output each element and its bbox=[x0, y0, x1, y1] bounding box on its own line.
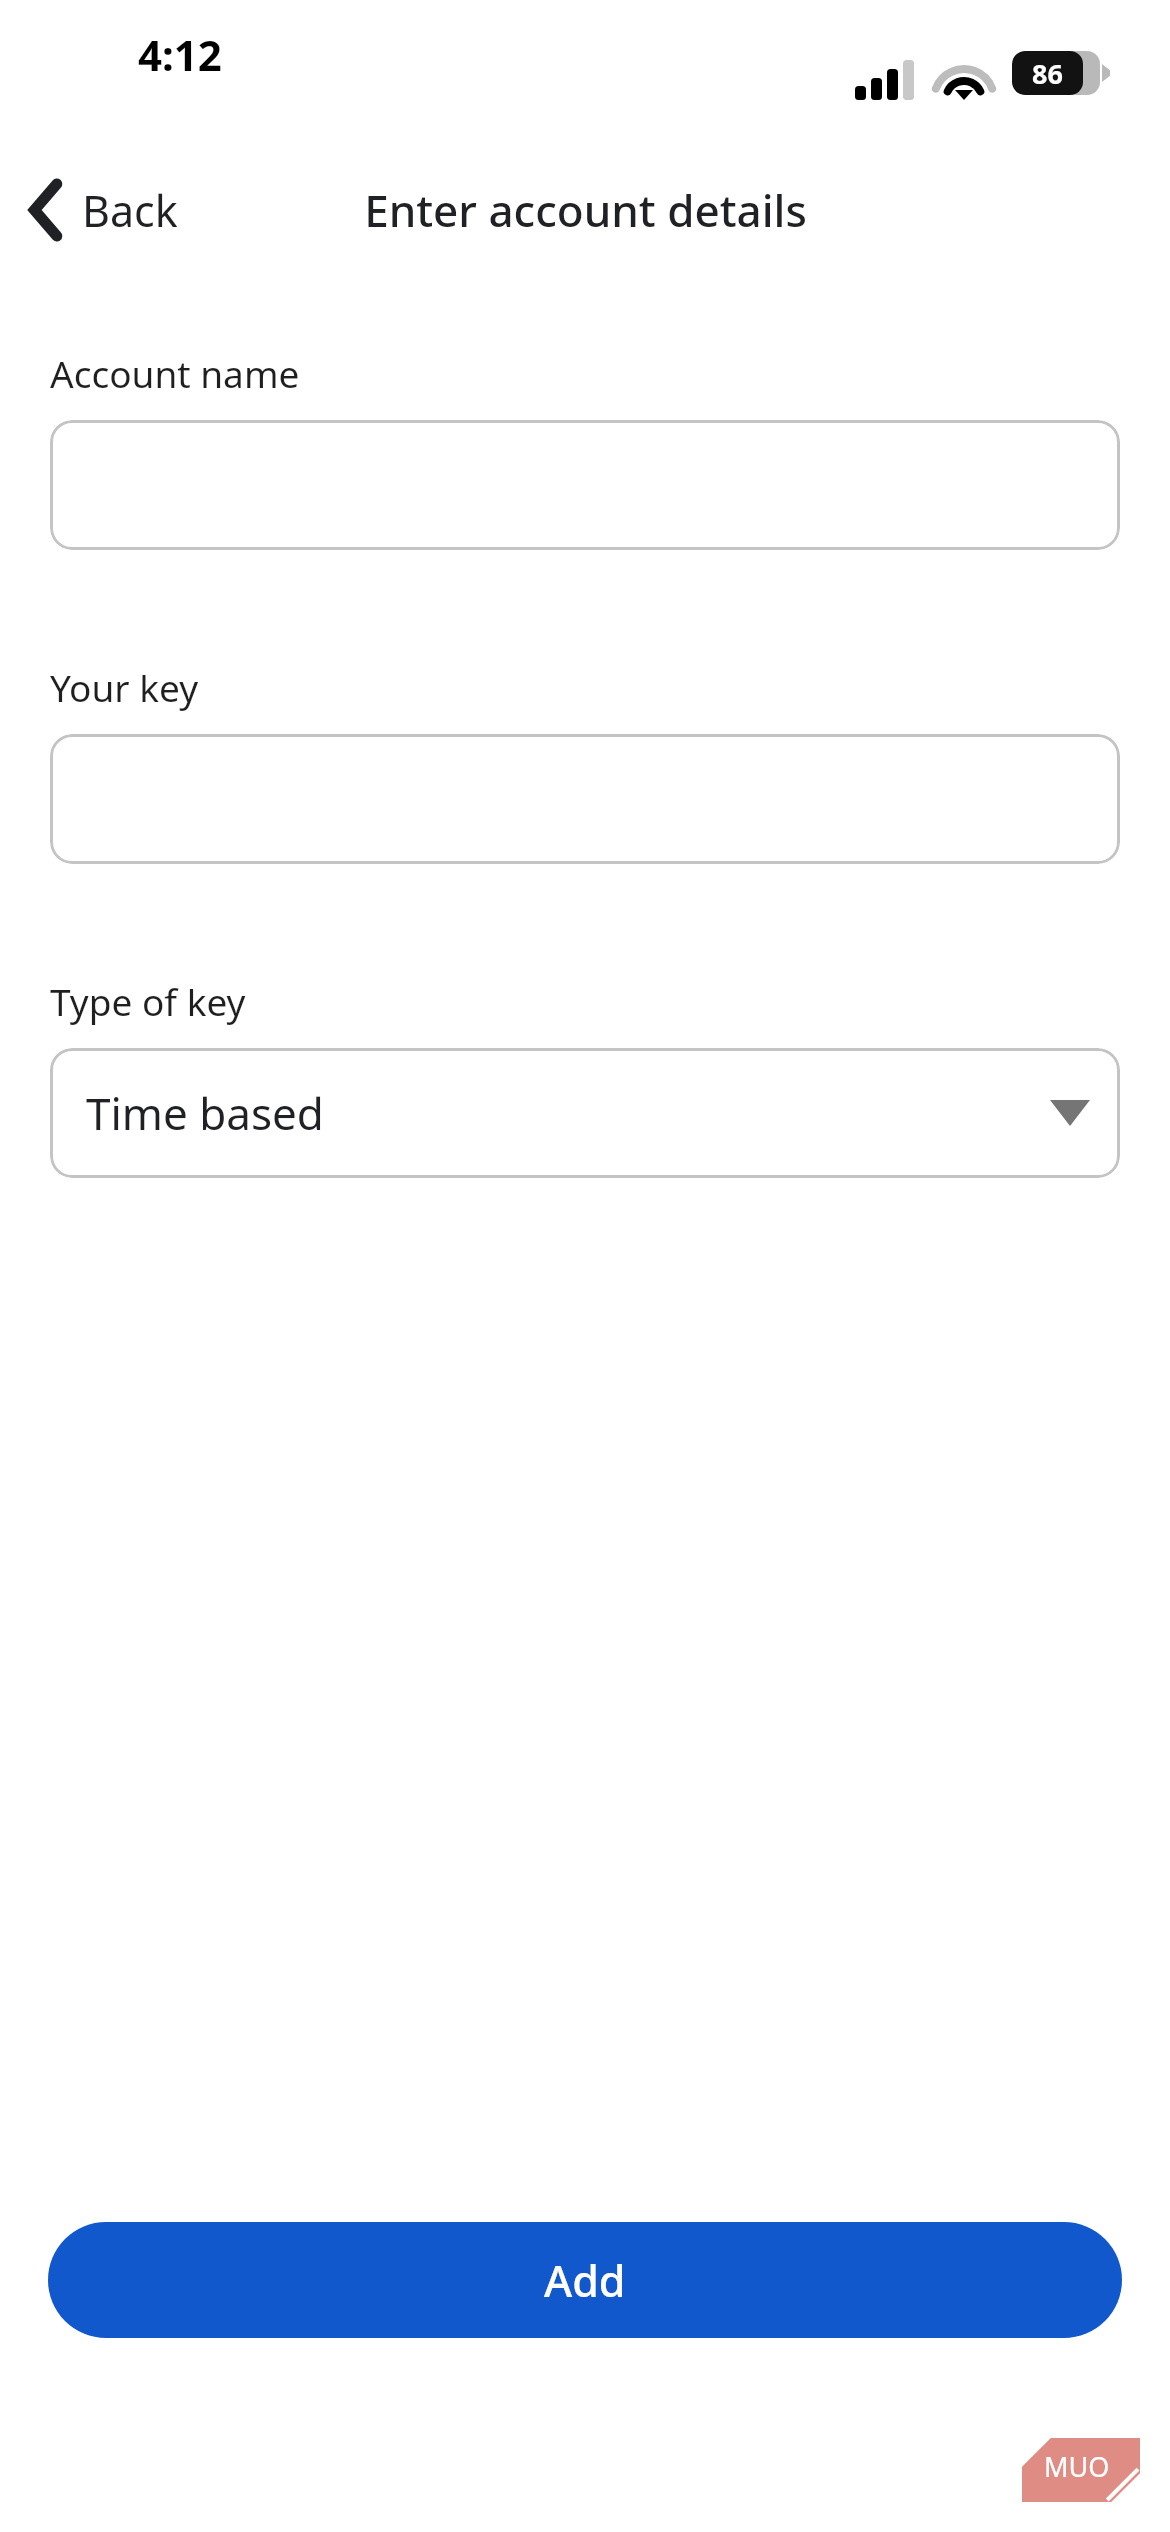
staticText: Add bbox=[544, 2251, 626, 2310]
other: Back bbox=[28, 179, 64, 241]
staticText: Type of key bbox=[50, 976, 246, 1026]
button[interactable] bbox=[50, 734, 1120, 864]
button[interactable]: Time based bbox=[50, 1048, 1120, 1178]
button[interactable]: Back bbox=[18, 168, 188, 252]
staticText: 86 bbox=[1032, 55, 1063, 92]
staticText: Back bbox=[82, 181, 178, 240]
staticText: Time based bbox=[86, 1083, 324, 1143]
staticText: MUO bbox=[1044, 2448, 1110, 2485]
staticText: 4:12 bbox=[138, 26, 222, 78]
staticText: Account name bbox=[50, 348, 300, 398]
staticText: Your key bbox=[50, 662, 198, 712]
button[interactable] bbox=[50, 420, 1120, 550]
staticText: Enter account details bbox=[364, 180, 807, 240]
button[interactable]: Add bbox=[48, 2222, 1122, 2338]
